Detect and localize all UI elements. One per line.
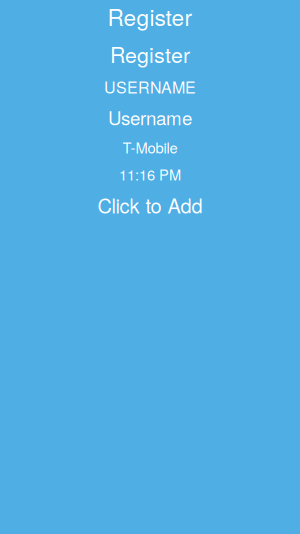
staticText: Register	[107, 0, 192, 32]
staticText: Register	[110, 38, 190, 69]
staticText: USERNAME	[104, 75, 196, 98]
staticText: Username	[108, 104, 192, 131]
staticText: 11:16 PM	[119, 164, 181, 185]
staticText: T-Mobile	[122, 137, 177, 158]
staticText: Click to Add	[97, 191, 202, 219]
